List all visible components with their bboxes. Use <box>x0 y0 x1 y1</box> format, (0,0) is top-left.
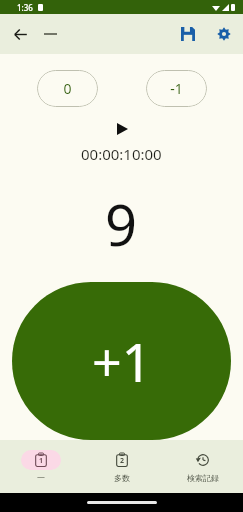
button[interactable]: 0 <box>37 70 98 107</box>
button[interactable]: 1 <box>0 450 81 483</box>
staticText: 多数 <box>114 473 130 483</box>
button[interactable]: 検索記録 <box>162 450 243 483</box>
staticText: 00:00:10:00 <box>81 144 162 164</box>
staticText: 一 <box>37 473 45 483</box>
button[interactable]: Back <box>6 20 34 48</box>
staticText: 検索記録 <box>187 473 219 483</box>
staticText: 2 <box>120 456 125 466</box>
staticText: 1:36 <box>17 2 33 13</box>
staticText: 1 <box>39 456 44 466</box>
button[interactable]: +1 <box>12 282 231 440</box>
button[interactable]: 2 <box>81 450 162 483</box>
button[interactable]: Settings <box>211 21 237 47</box>
staticText: 0 <box>63 79 72 98</box>
button[interactable]: Title <box>38 22 62 46</box>
staticText: -1 <box>170 79 183 98</box>
button[interactable]: Save <box>175 21 201 47</box>
staticText: +1 <box>92 326 152 397</box>
button[interactable]: -1 <box>146 70 207 107</box>
button[interactable]: Play <box>113 120 131 138</box>
staticText: 9 <box>105 186 138 262</box>
